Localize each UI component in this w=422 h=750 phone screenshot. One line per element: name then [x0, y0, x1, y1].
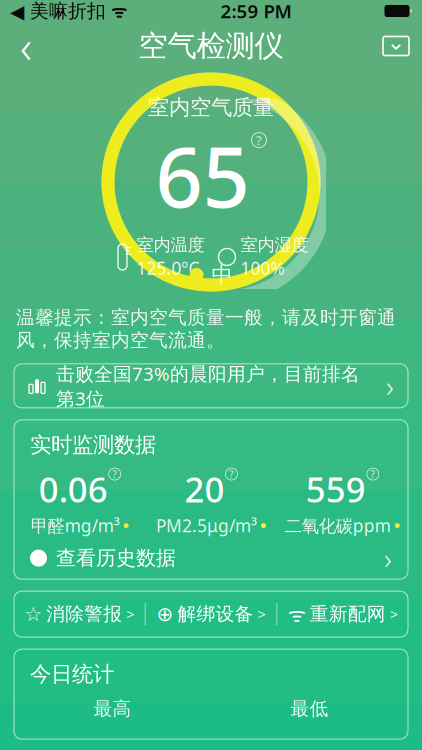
staticText: ⊕	[156, 603, 173, 625]
staticText: 重新配网	[310, 603, 386, 625]
button[interactable]: 返回	[0, 24, 52, 68]
staticText: ᯤ	[288, 601, 306, 627]
staticText: 2:59 PM	[220, 0, 291, 23]
staticText: PM2.5μg/m³	[156, 514, 257, 537]
staticText: 甲醛mg/m³	[31, 514, 120, 537]
staticText: ◀ 美嘛折扣	[10, 0, 106, 22]
staticText: 室内湿度	[240, 234, 308, 256]
button[interactable]: ☆	[14, 591, 145, 637]
staticText: ›	[386, 366, 394, 405]
staticText: 最低	[290, 697, 328, 720]
staticText: 查看历史数据	[56, 546, 176, 570]
staticText: >	[390, 604, 398, 624]
staticText: 消除警报	[46, 603, 122, 625]
staticText: 最高	[93, 697, 131, 720]
staticText: ⌄	[386, 29, 405, 55]
button[interactable]: ⊕	[146, 591, 276, 637]
staticText: 559	[306, 466, 366, 512]
staticText: 20	[184, 466, 224, 512]
staticText: 今日统计	[30, 661, 114, 687]
staticText: 中	[211, 262, 232, 288]
staticText: 击败全国73%的晨阳用户，目前排名第3位	[56, 361, 360, 411]
staticText: ᯤ	[106, 0, 127, 22]
button[interactable]: 消息	[370, 24, 422, 68]
staticText: 65	[155, 121, 249, 230]
staticText: ?	[112, 467, 117, 481]
staticText: 二氧化碳ppm	[285, 514, 391, 537]
staticText: 室内温度	[136, 234, 204, 256]
staticText: ?	[370, 467, 375, 481]
staticText: 空气检测仪	[138, 28, 283, 64]
staticText: 125.0ºC	[136, 257, 199, 280]
staticText: ?	[256, 131, 262, 149]
staticText: ›	[384, 539, 392, 578]
staticText: >	[126, 604, 134, 624]
staticText: 0.06	[39, 466, 108, 512]
button[interactable]: 查看历史数据	[14, 537, 408, 579]
staticText: ?	[229, 467, 234, 481]
staticText: 温馨提示：室内空气质量一般，请及时开窗通风，保持室内空气流通。	[16, 306, 396, 352]
staticText: 室内空气质量	[148, 94, 274, 121]
staticText: ☆	[24, 603, 42, 625]
staticText: 100%	[240, 257, 284, 280]
staticText: 解绑设备	[177, 603, 253, 625]
staticText: 实时监测数据	[30, 432, 156, 458]
staticText: ‹	[20, 16, 32, 76]
button[interactable]: 击败全国73%的晨阳用户，目前排名第3位	[0, 364, 422, 408]
button[interactable]: ᯤ	[277, 591, 408, 637]
staticText: >	[257, 604, 265, 624]
